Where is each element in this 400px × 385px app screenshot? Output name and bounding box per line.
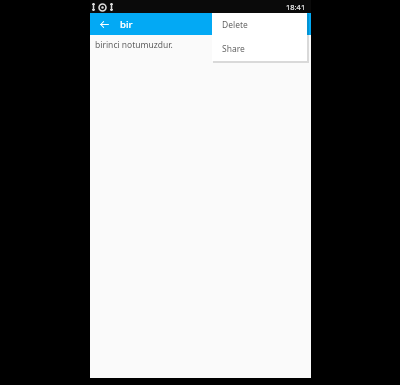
button[interactable]: Share: [212, 37, 307, 61]
staticText: birinci notumuzdur.: [95, 39, 173, 51]
staticText: Share: [222, 43, 245, 55]
staticText: Delete: [222, 19, 248, 31]
staticText: bir: [120, 18, 133, 31]
button[interactable]: Delete: [212, 13, 307, 37]
staticText: 18:41: [286, 2, 306, 12]
button[interactable]: Back: [96, 16, 112, 32]
